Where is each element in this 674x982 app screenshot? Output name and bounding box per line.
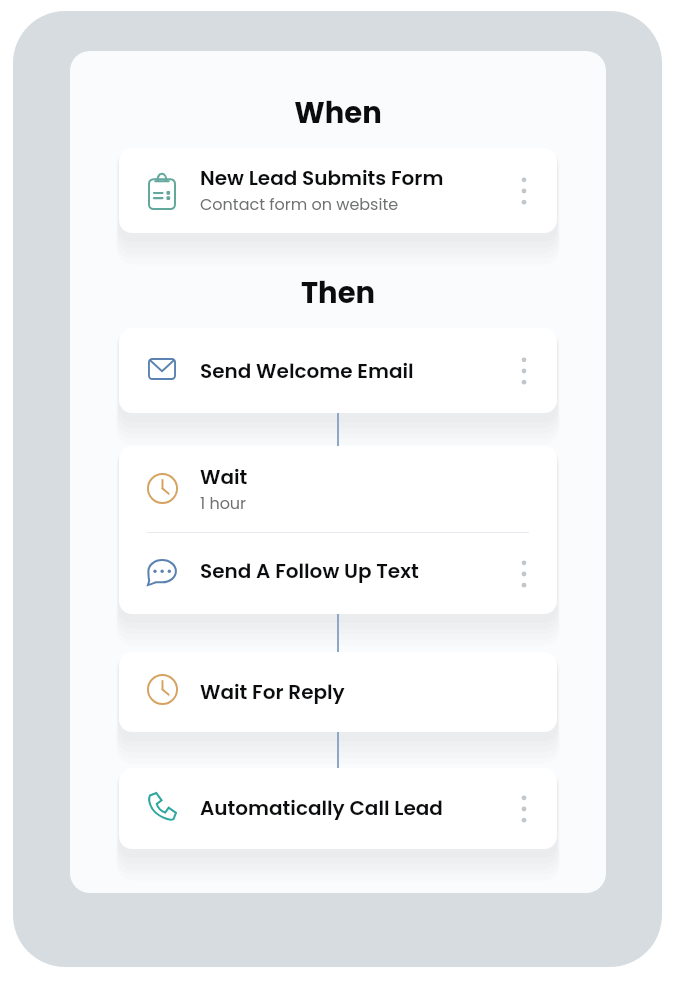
staticText: Wait For Reply <box>200 678 345 706</box>
staticText: Automatically Call Lead <box>200 794 443 822</box>
staticText: Contact form on website <box>200 193 399 215</box>
button[interactable]: Wait <box>119 446 557 532</box>
button[interactable]: Automatically Call Lead <box>119 768 557 849</box>
button[interactable]: Send A Follow Up Text <box>119 533 557 614</box>
button[interactable]: Send Welcome Email <box>119 328 557 413</box>
button[interactable]: Wait For Reply <box>119 652 557 732</box>
button[interactable]: New Lead Submits Form <box>119 148 557 233</box>
button[interactable]: More options <box>507 792 541 826</box>
staticText: Send Welcome Email <box>200 357 414 385</box>
button[interactable]: More options <box>507 557 541 591</box>
staticText: Wait <box>200 463 248 491</box>
staticText: Send A Follow Up Text <box>200 557 419 585</box>
button[interactable]: More options <box>507 354 541 388</box>
button[interactable]: More options <box>507 174 541 208</box>
staticText: New Lead Submits Form <box>200 164 444 192</box>
staticText: 1 hour <box>200 492 247 514</box>
staticText: When <box>70 93 606 134</box>
staticText: Then <box>70 273 606 314</box>
